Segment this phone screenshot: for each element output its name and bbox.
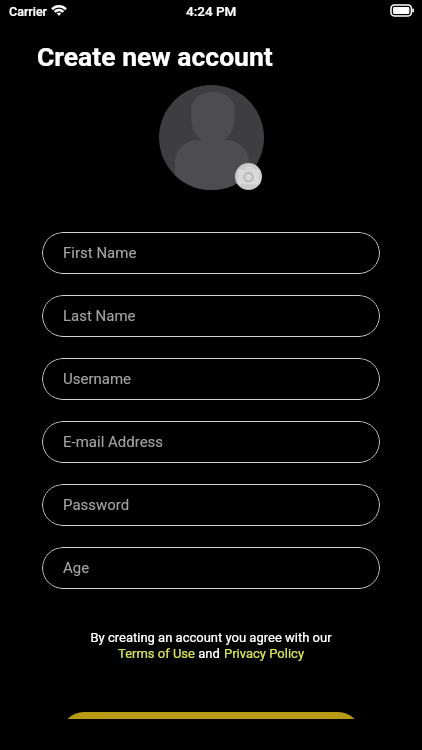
staticText: and xyxy=(195,646,224,661)
button[interactable]: First Name xyxy=(42,232,380,274)
staticText: 4:24 PM xyxy=(186,3,237,19)
button[interactable]: Password xyxy=(42,484,380,526)
button[interactable]: Change profile photo xyxy=(159,85,264,190)
staticText: E-mail Address xyxy=(63,433,164,451)
staticText: Username xyxy=(63,370,132,388)
button[interactable]: E-mail Address xyxy=(42,421,380,463)
button[interactable]: Terms of Use xyxy=(118,646,195,661)
button[interactable]: Privacy Policy xyxy=(224,646,305,661)
staticText: Password xyxy=(63,496,130,514)
button[interactable] xyxy=(61,712,361,750)
button[interactable]: Username xyxy=(42,358,380,400)
staticText: First Name xyxy=(63,244,137,262)
staticText: Carrier xyxy=(9,4,48,19)
button[interactable]: Age xyxy=(42,547,380,589)
staticText: Age xyxy=(63,559,90,577)
staticText: Last Name xyxy=(63,307,136,325)
staticText: Create new account xyxy=(37,41,273,72)
staticText: By creating an account you agree with ou… xyxy=(90,630,332,645)
button[interactable]: Last Name xyxy=(42,295,380,337)
